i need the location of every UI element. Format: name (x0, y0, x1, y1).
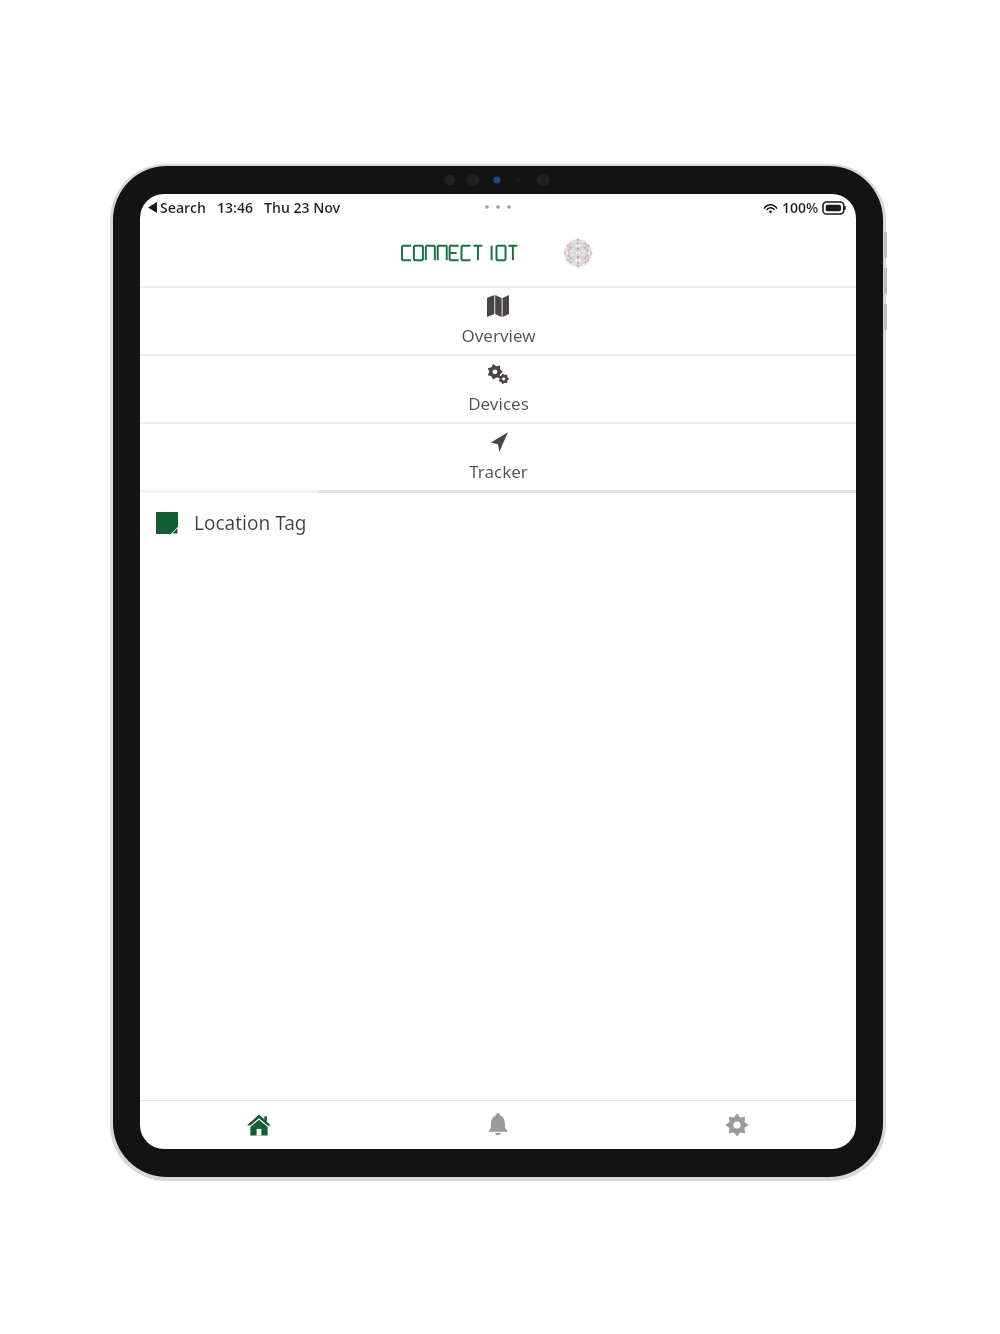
staticText: 13:46 (217, 198, 253, 217)
staticText: Tracker (469, 460, 528, 483)
staticText: 100% (782, 198, 819, 217)
staticText: Location Tag (194, 510, 307, 536)
button[interactable]: Location Tag (140, 493, 856, 553)
button[interactable]: Overview (140, 288, 856, 354)
button[interactable]: Home (140, 1101, 378, 1149)
button[interactable]: Tracker (140, 424, 856, 490)
staticText: Devices (468, 392, 529, 415)
button[interactable]: Devices (140, 356, 856, 422)
button[interactable]: Notifications (378, 1101, 617, 1149)
staticText: Thu 23 Nov (264, 198, 341, 217)
staticText: Search (160, 198, 206, 217)
button[interactable]: Settings (617, 1101, 856, 1149)
staticText: Overview (461, 324, 536, 347)
